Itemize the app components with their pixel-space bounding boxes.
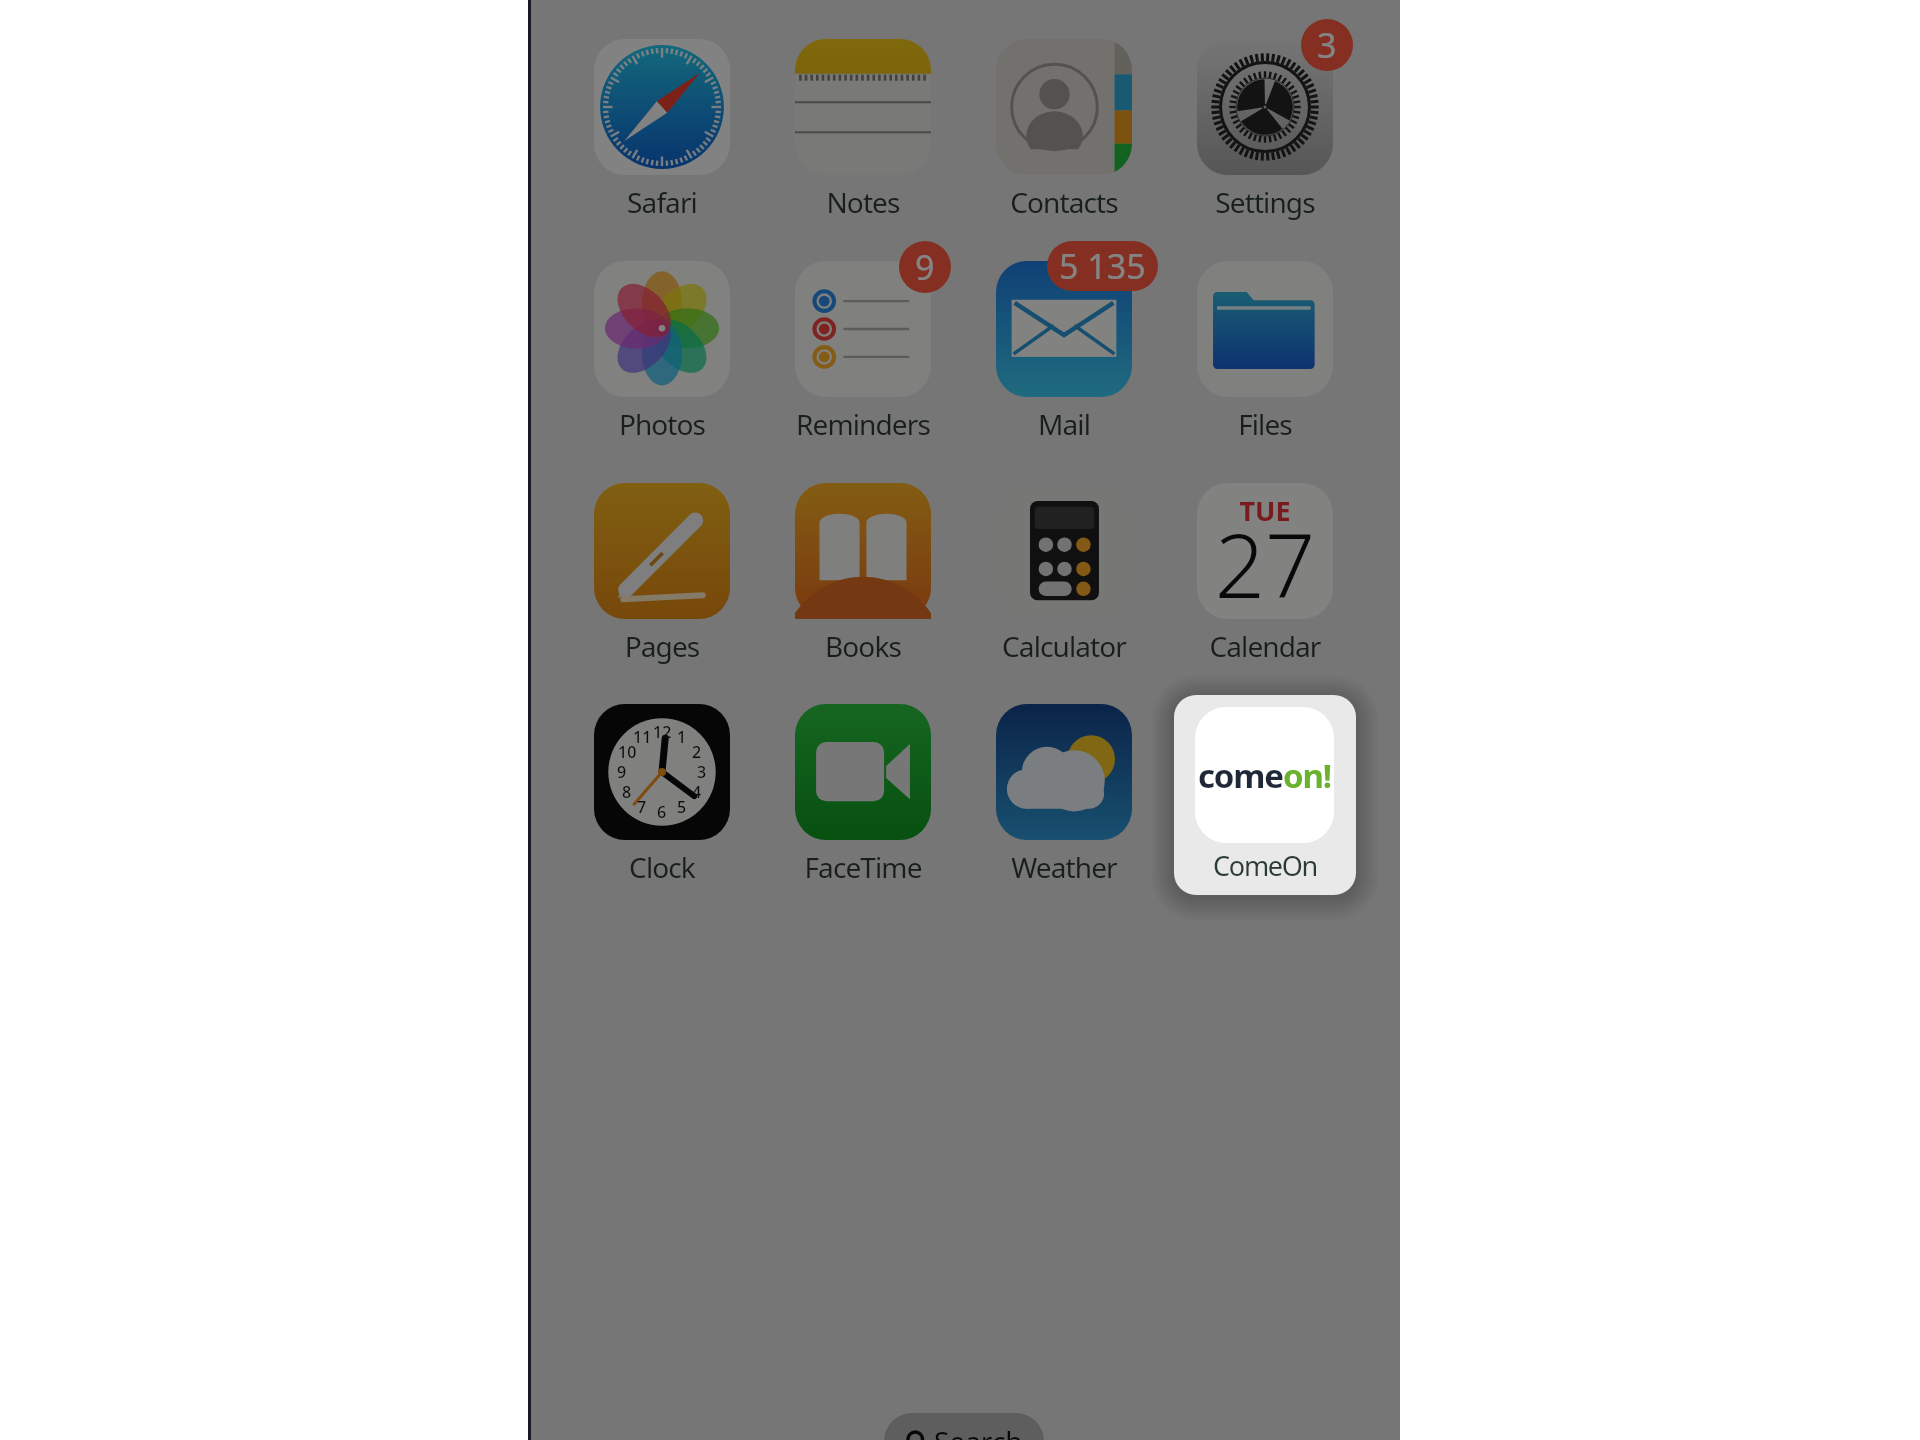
staticText: 8 [622,781,632,803]
staticText: Contacts [964,183,1164,221]
staticText: Notes [763,183,963,221]
button[interactable]: Settings [1165,39,1365,223]
button[interactable]: Weather [964,704,1164,888]
button[interactable]: FaceTime [763,704,963,888]
staticText: Mail [964,405,1164,443]
button[interactable]: 12 [562,704,762,888]
staticText: Photos [562,405,762,443]
staticText: 6 [657,801,667,823]
staticText: come [1198,753,1283,798]
button[interactable]: Reminders [763,261,963,445]
staticText: 9 [617,761,627,783]
staticText: Calendar [1165,627,1365,665]
staticText: Safari [562,183,762,221]
staticText: Files [1165,405,1365,443]
button[interactable]: come [1174,695,1356,895]
staticText: 3 [697,761,707,783]
button[interactable]: Calculator [964,483,1164,667]
button[interactable]: Photos [562,261,762,445]
staticText: 5 [677,796,687,818]
button[interactable]: Search [884,1413,1044,1440]
button[interactable]: Safari [562,39,762,223]
staticText: 3 [1317,22,1337,68]
staticText: 4 [692,781,702,803]
staticText: ComeOn [1174,847,1356,884]
staticText: on! [1283,753,1331,798]
staticText: 1 [677,726,687,748]
button[interactable]: TUE [1165,483,1365,667]
button[interactable]: Files [1165,261,1365,445]
staticText: TUE [1197,492,1333,529]
staticText: 12 [653,721,672,743]
staticText: Settings [1165,183,1365,221]
button[interactable]: Notes [763,39,963,223]
staticText: FaceTime [763,848,963,886]
staticText: 7 [637,796,647,818]
button[interactable]: Pages [562,483,762,667]
staticText: 27 [1197,504,1333,624]
staticText: Reminders [763,405,963,443]
staticText: Books [763,627,963,665]
button[interactable]: Mail [964,261,1164,445]
staticText: 2 [692,741,702,763]
staticText: Calculator [964,627,1164,665]
staticText: Search [934,1422,1023,1440]
staticText: 10 [618,741,637,763]
staticText: Pages [562,627,762,665]
staticText: 11 [633,726,652,748]
staticText: Clock [562,848,762,886]
button[interactable]: Contacts [964,39,1164,223]
staticText: 9 [915,244,935,290]
button[interactable]: Books [763,483,963,667]
staticText: 5 135 [1059,243,1146,289]
staticText: Weather [964,848,1164,886]
